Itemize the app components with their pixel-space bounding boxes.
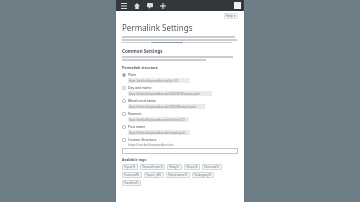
button[interactable]: Custom Structure: [122, 137, 238, 142]
staticText: Numeric: [128, 111, 142, 116]
button[interactable]: Numeric: [122, 111, 238, 116]
staticText: %postname%: [168, 173, 188, 177]
staticText: Permalink structure: [122, 65, 159, 70]
button[interactable]: Day and name: [122, 85, 238, 90]
staticText: Custom Structure: [128, 137, 157, 142]
button[interactable]: %day%: [167, 164, 182, 170]
button[interactable]: Plain: [122, 72, 238, 77]
staticText: https://testbuild.wpsandbox.dev: [128, 143, 174, 147]
staticText: Month and name: [128, 98, 156, 103]
button[interactable]: %hour%: [184, 164, 200, 170]
button[interactable]: Help ▾: [226, 14, 236, 18]
button[interactable]: %author%: [122, 180, 141, 186]
button[interactable]: Home: [132, 1, 141, 10]
staticText: %year%: [124, 165, 136, 169]
staticText: %hour%: [186, 165, 198, 169]
staticText: Permalink Settings: [122, 22, 193, 33]
button[interactable]: Month and name: [122, 98, 238, 103]
button[interactable]: Comments: [145, 1, 154, 10]
button[interactable]: %year%: [122, 164, 138, 170]
staticText: https://testbuild.wpsandbox.dev/2026/04/…: [129, 92, 201, 96]
staticText: Post name: [128, 124, 146, 129]
staticText: %post_id%: [146, 173, 162, 177]
button[interactable]: New: [158, 1, 167, 10]
button[interactable]: %postname%: [166, 172, 190, 178]
staticText: Plain: [128, 72, 136, 77]
staticText: https://testbuild.wpsandbox.dev/?p=123: [129, 79, 178, 83]
button[interactable]: %second%: [122, 172, 142, 178]
staticText: https://testbuild.wpsandbox.dev/sample-p…: [129, 131, 186, 135]
staticText: %minute%: [204, 165, 220, 169]
button[interactable]: [122, 148, 238, 154]
staticText: %category%: [194, 173, 212, 177]
staticText: %author%: [124, 181, 139, 185]
button[interactable]: Post name: [122, 124, 238, 129]
button[interactable]: Menu: [119, 1, 128, 10]
staticText: Help ▾: [226, 14, 236, 18]
staticText: %monthnum%: [142, 165, 163, 169]
staticText: https://testbuild.wpsandbox.dev/2026/04/…: [129, 105, 197, 109]
button[interactable]: %monthnum%: [140, 164, 165, 170]
staticText: Day and name: [128, 85, 152, 90]
staticText: %second%: [124, 173, 140, 177]
staticText: Common Settings: [122, 48, 163, 54]
button[interactable]: %post_id%: [144, 172, 164, 178]
button[interactable]: %category%: [192, 172, 214, 178]
button[interactable]: %minute%: [202, 164, 222, 170]
staticText: Available tags:: [122, 157, 147, 162]
staticText: %day%: [169, 165, 180, 169]
staticText: https://testbuild.wpsandbox.dev/archives…: [129, 118, 185, 122]
